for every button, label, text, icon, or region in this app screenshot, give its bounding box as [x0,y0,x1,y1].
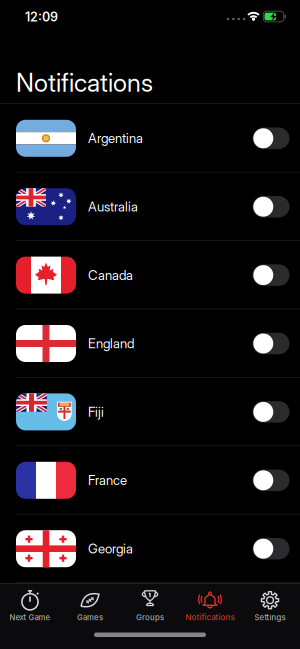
staticText: Georgia [88,541,133,557]
button[interactable]: Notifications [180,584,240,622]
staticText: England [88,335,134,351]
button[interactable]: Games [60,584,120,622]
staticText: Games [77,613,103,622]
button[interactable]: Canada notifications [252,264,289,286]
staticText: Fiji [88,404,104,420]
staticText: Settings [254,613,285,622]
button[interactable]: Groups [120,584,180,622]
staticText: Argentina [88,130,143,146]
staticText: 12:09 [25,9,58,25]
button[interactable]: Settings [240,584,300,622]
staticText: Notifications [16,67,153,98]
button[interactable]: Georgia notifications [252,538,289,559]
staticText: Australia [88,199,138,215]
button[interactable]: England notifications [252,333,289,354]
staticText: Notifications [185,613,234,622]
button[interactable]: Fiji notifications [252,401,289,423]
button[interactable]: Argentina notifications [252,127,289,149]
staticText: Groups [136,613,164,622]
staticText: Canada [88,267,133,283]
button[interactable]: France notifications [252,469,289,491]
button[interactable]: Next Game [0,584,60,622]
staticText: France [88,472,127,488]
button[interactable]: Australia notifications [252,196,289,217]
staticText: Next Game [9,613,50,622]
